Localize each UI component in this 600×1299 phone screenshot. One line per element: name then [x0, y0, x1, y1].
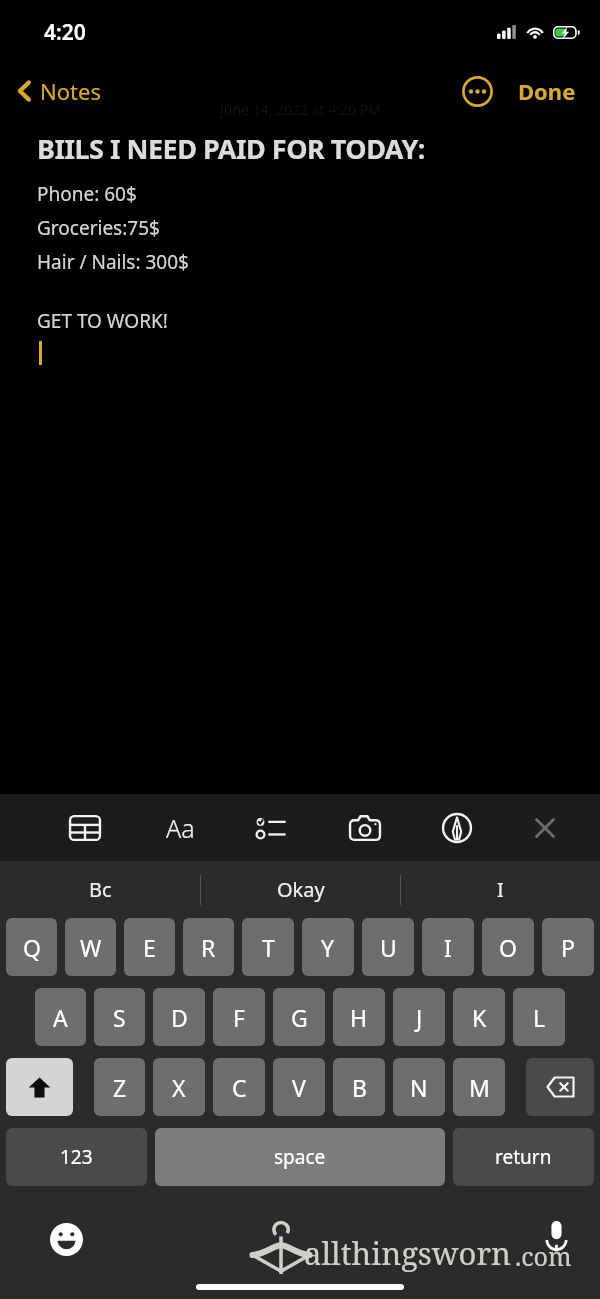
- staticText: G: [291, 1002, 308, 1033]
- button[interactable]: Emoji keyboard: [44, 1217, 88, 1261]
- staticText: A: [53, 1002, 68, 1033]
- staticText: S: [113, 1002, 126, 1033]
- button[interactable]: X: [153, 1058, 205, 1116]
- button[interactable]: U: [362, 918, 414, 976]
- staticText: K: [472, 1002, 487, 1033]
- staticText: Okay: [277, 876, 325, 903]
- button[interactable]: Markup: [431, 802, 483, 854]
- staticText: I: [497, 876, 504, 903]
- staticText: H: [350, 1002, 368, 1033]
- button[interactable]: E: [124, 918, 175, 976]
- button[interactable]: space: [155, 1128, 445, 1186]
- staticText: R: [201, 932, 216, 963]
- staticText: Z: [113, 1072, 127, 1103]
- button[interactable]: Shift: [6, 1058, 73, 1116]
- staticText: June 14, 2022 at 4:20 PM: [220, 100, 381, 119]
- button[interactable]: W: [65, 918, 116, 976]
- button[interactable]: S: [94, 988, 145, 1046]
- button[interactable]: Okay: [201, 861, 400, 918]
- staticText: BIILS I NEED PAID FOR TODAY:: [37, 130, 425, 167]
- button[interactable]: Text formatting: [154, 802, 206, 854]
- button[interactable]: T: [242, 918, 294, 976]
- staticText: O: [499, 932, 517, 963]
- staticText: C: [232, 1072, 247, 1103]
- button[interactable]: Dictation: [534, 1215, 578, 1259]
- button[interactable]: Done: [506, 67, 588, 115]
- button[interactable]: Insert table: [59, 802, 111, 854]
- button[interactable]: F: [213, 988, 265, 1046]
- staticText: return: [495, 1144, 552, 1170]
- staticText: L: [533, 1002, 546, 1033]
- button[interactable]: Z: [94, 1058, 145, 1116]
- button[interactable]: M: [453, 1058, 505, 1116]
- staticText: Hair / Nails: 300$: [37, 249, 189, 275]
- button[interactable]: return: [453, 1128, 594, 1186]
- button[interactable]: O: [482, 918, 534, 976]
- staticText: Y: [321, 932, 335, 963]
- button[interactable]: Bc: [0, 861, 200, 918]
- staticText: allthingsworn: [304, 1232, 512, 1274]
- staticText: Q: [23, 932, 41, 963]
- button[interactable]: H: [333, 988, 385, 1046]
- button[interactable]: I: [401, 861, 600, 918]
- staticText: J: [416, 1002, 423, 1033]
- button[interactable]: C: [213, 1058, 265, 1116]
- staticText: F: [233, 1002, 245, 1033]
- staticText: 4:20: [44, 18, 86, 47]
- button[interactable]: Camera: [339, 802, 391, 854]
- button[interactable]: R: [183, 918, 234, 976]
- button[interactable]: D: [153, 988, 205, 1046]
- button[interactable]: K: [453, 988, 505, 1046]
- button[interactable]: Y: [302, 918, 354, 976]
- staticText: Bc: [89, 876, 112, 903]
- staticText: T: [262, 932, 275, 963]
- staticText: .com: [515, 1239, 572, 1273]
- staticText: Notes: [40, 76, 101, 106]
- staticText: U: [380, 932, 397, 963]
- button[interactable]: Close keyboard: [519, 802, 571, 854]
- button[interactable]: More options: [454, 68, 500, 114]
- button[interactable]: Q: [6, 918, 57, 976]
- staticText: Done: [518, 76, 576, 106]
- button[interactable]: G: [273, 988, 325, 1046]
- button[interactable]: A: [35, 988, 86, 1046]
- button[interactable]: Backspace: [526, 1058, 594, 1116]
- staticText: space: [274, 1144, 326, 1170]
- button[interactable]: V: [273, 1058, 325, 1116]
- staticText: V: [292, 1072, 306, 1103]
- staticText: Phone: 60$: [37, 181, 137, 207]
- staticText: GET TO WORK!: [37, 308, 168, 334]
- staticText: B: [352, 1072, 367, 1103]
- staticText: N: [410, 1072, 428, 1103]
- staticText: Aa: [166, 811, 195, 845]
- button[interactable]: L: [513, 988, 565, 1046]
- button[interactable]: N: [393, 1058, 445, 1116]
- button[interactable]: I: [422, 918, 474, 976]
- staticText: M: [469, 1072, 490, 1103]
- button[interactable]: Notes: [0, 69, 115, 113]
- staticText: X: [172, 1072, 186, 1103]
- button[interactable]: B: [333, 1058, 385, 1116]
- button[interactable]: 123: [6, 1128, 147, 1186]
- staticText: E: [143, 932, 156, 963]
- button[interactable]: J: [393, 988, 445, 1046]
- staticText: W: [80, 932, 102, 963]
- staticText: Groceries:75$: [37, 215, 160, 241]
- staticText: 123: [60, 1144, 93, 1170]
- staticText: P: [561, 932, 575, 963]
- button[interactable]: Checklist: [244, 802, 296, 854]
- button[interactable]: P: [542, 918, 594, 976]
- staticText: D: [171, 1002, 188, 1033]
- staticText: I: [444, 932, 452, 963]
